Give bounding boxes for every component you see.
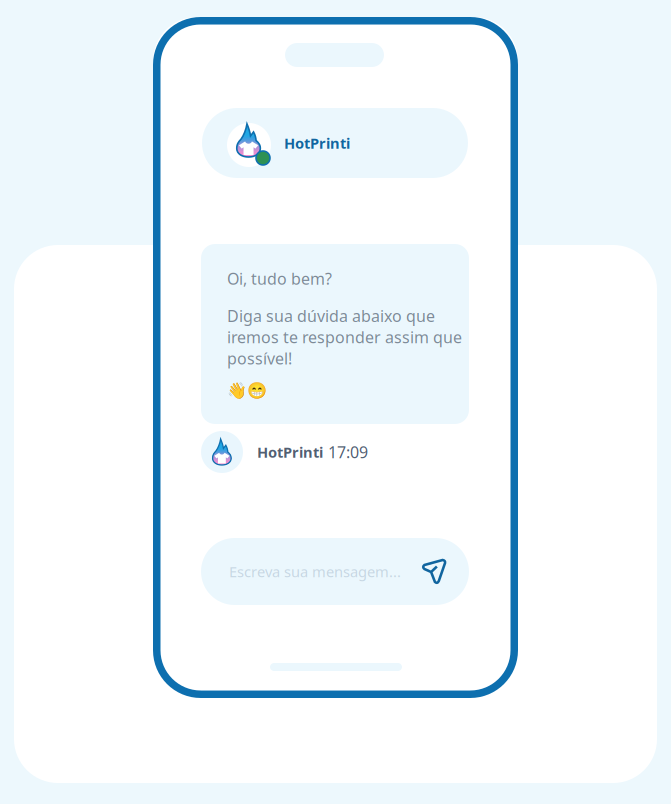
staticText: Oi, tudo bem? (227, 268, 332, 289)
button[interactable]: HotPrinti (202, 108, 468, 178)
button[interactable]: Escreva sua mensagem... (201, 538, 469, 605)
staticText: 👋😁 (227, 381, 267, 399)
staticText: HotPrinti (284, 133, 350, 153)
staticText: Escreva sua mensagem... (229, 562, 401, 581)
staticText: HotPrinti (257, 442, 323, 462)
staticText: possível! (227, 348, 292, 369)
staticText: Diga sua dúvida abaixo que (227, 305, 435, 326)
staticText: iremos te responder assim que (227, 326, 462, 348)
staticText: 17:09 (328, 441, 368, 463)
